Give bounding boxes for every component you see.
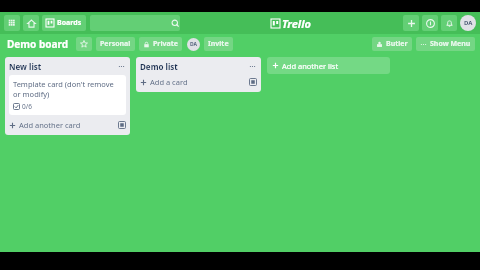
button[interactable]: Template card (don't remove or modify): [9, 75, 126, 115]
staticText: DA: [190, 41, 198, 48]
button[interactable]: Search: [90, 15, 180, 31]
staticText: Trello: [282, 16, 311, 31]
button[interactable]: Add another card: [9, 119, 126, 131]
staticText: Add a card: [150, 77, 188, 87]
button[interactable]: Show Menu: [416, 37, 475, 51]
staticText: Show Menu: [430, 39, 471, 49]
staticText: Boards: [57, 18, 82, 28]
button[interactable]: List actions: [117, 62, 126, 71]
button[interactable]: Invite: [204, 37, 233, 51]
staticText: Invite: [208, 39, 229, 49]
button[interactable]: Information: [422, 15, 438, 31]
staticText: Personal: [100, 39, 131, 49]
button[interactable]: Boards: [42, 15, 86, 31]
staticText: New list: [9, 61, 42, 72]
staticText: Demo board: [7, 37, 69, 51]
staticText: Butler: [386, 39, 408, 49]
button[interactable]: Star board: [76, 37, 92, 51]
staticText: Add another card: [19, 120, 81, 130]
staticText: Add another list: [282, 61, 339, 71]
button[interactable]: Apps: [4, 15, 20, 31]
staticText: Private: [153, 39, 178, 49]
button[interactable]: Member DA: [187, 38, 200, 51]
button[interactable]: Add a card: [140, 76, 257, 88]
button[interactable]: Demo board: [5, 37, 71, 51]
staticText: Template card (don't remove or modify): [13, 79, 122, 99]
button[interactable]: New list: [9, 61, 126, 72]
staticText: DA: [464, 19, 473, 27]
button[interactable]: Demo list: [140, 61, 257, 72]
button[interactable]: List actions: [248, 62, 257, 71]
button[interactable]: Add another list: [267, 57, 390, 74]
button[interactable]: Butler: [372, 37, 412, 51]
staticText: Demo list: [140, 61, 178, 72]
button[interactable]: Personal: [96, 37, 135, 51]
button[interactable]: Trello: [271, 16, 311, 31]
button[interactable]: Home: [23, 15, 39, 31]
button[interactable]: Private: [139, 37, 182, 51]
staticText: 0/6: [22, 102, 32, 111]
button[interactable]: Add: [403, 15, 419, 31]
button[interactable]: Account: [460, 15, 476, 31]
button[interactable]: Notifications: [441, 15, 457, 31]
